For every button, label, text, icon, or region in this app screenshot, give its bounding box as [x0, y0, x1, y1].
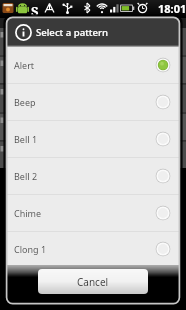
staticText: Clong 1	[14, 243, 47, 255]
button[interactable]: Chime	[6, 195, 179, 231]
staticText: Select a pattern	[36, 26, 109, 39]
staticText: Chime	[14, 207, 42, 219]
button[interactable]: Bell 1	[6, 121, 179, 157]
button[interactable]: Cancel	[38, 269, 148, 294]
staticText: Beep	[14, 96, 36, 108]
button[interactable]: Clong 1	[6, 232, 179, 265]
staticText: 18:01	[158, 1, 186, 16]
staticText: Alert	[14, 59, 35, 71]
button[interactable]: Beep	[6, 84, 179, 120]
staticText: Cancel	[77, 275, 109, 289]
button[interactable]: Bell 2	[6, 158, 179, 194]
staticText: Bell 1	[14, 133, 38, 145]
staticText: Bell 2	[14, 170, 38, 182]
button[interactable]: Alert	[6, 47, 179, 83]
staticText: S	[31, 2, 39, 20]
